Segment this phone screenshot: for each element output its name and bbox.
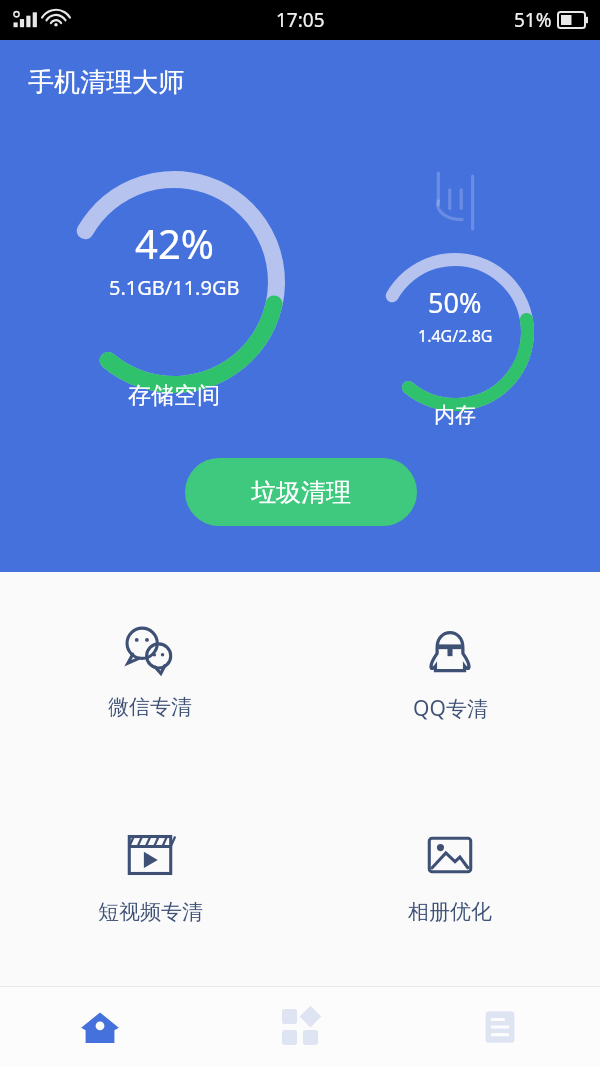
staticText: 垃圾清理 [251, 477, 351, 508]
staticText: 17:05 [276, 7, 325, 33]
staticText: 1.4G/2.8G [418, 325, 493, 347]
button[interactable]: Home [0, 987, 200, 1067]
staticText: 存储空间 [128, 381, 220, 410]
button[interactable]: 短视频专清 [0, 823, 300, 929]
staticText: 手机清理大师 [28, 66, 184, 99]
staticText: 微信专清 [108, 694, 192, 720]
button[interactable]: More [400, 987, 600, 1067]
staticText: 51% [514, 7, 552, 33]
button[interactable]: Apps [200, 987, 400, 1067]
staticText: QQ专清 [413, 694, 488, 723]
button[interactable]: QQ专清 [300, 618, 600, 727]
staticText: 内存 [434, 402, 476, 428]
button[interactable]: 相册优化 [300, 823, 600, 929]
staticText: 相册优化 [408, 899, 492, 925]
button[interactable]: 垃圾清理 [185, 458, 417, 526]
staticText: 5.1GB/11.9GB [109, 274, 240, 301]
button[interactable]: 微信专清 [0, 618, 300, 724]
staticText: 短视频专清 [98, 899, 203, 925]
staticText: 42% [135, 216, 214, 270]
staticText: 50% [428, 284, 482, 321]
